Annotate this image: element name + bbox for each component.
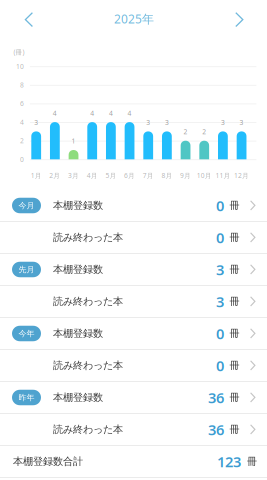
button[interactable]: 今年 <box>0 318 267 350</box>
button[interactable]: 前の年 <box>0 0 56 34</box>
staticText: 本棚登録数合計 <box>13 455 83 468</box>
staticText: 3月 <box>68 171 79 180</box>
button[interactable]: 今月 <box>0 190 267 222</box>
staticText: 本棚登録数 <box>53 199 103 212</box>
staticText: 4 <box>90 109 94 118</box>
staticText: 0 <box>216 196 224 215</box>
staticText: 今年 <box>18 329 34 338</box>
staticText: 7月 <box>143 171 154 180</box>
staticText: 先月 <box>18 265 34 274</box>
staticText: 冊 <box>229 231 239 244</box>
staticText: 12月 <box>234 171 249 180</box>
staticText: 2 <box>20 136 24 145</box>
staticText: 冊 <box>247 455 257 468</box>
staticText: 2025年 <box>114 11 154 27</box>
staticText: 冊 <box>229 295 239 308</box>
staticText: 11月 <box>215 171 230 180</box>
staticText: 8 <box>20 80 24 89</box>
staticText: 冊 <box>229 327 239 340</box>
staticText: 冊 <box>229 263 239 276</box>
staticText: 3 <box>165 118 169 127</box>
button[interactable]: 読み終わった本 <box>0 350 267 382</box>
staticText: 0 <box>216 324 224 343</box>
staticText: 6月 <box>124 171 135 180</box>
staticText: 昨年 <box>18 393 34 402</box>
button[interactable]: 読み終わった本 <box>0 222 267 254</box>
staticText: 読み終わった本 <box>53 231 123 244</box>
staticText: 読み終わった本 <box>53 423 123 436</box>
button[interactable]: 次の年 <box>211 0 267 34</box>
staticText: 4 <box>109 109 113 118</box>
staticText: 0 <box>216 228 224 247</box>
staticText: 6 <box>20 99 24 108</box>
staticText: 冊 <box>229 391 239 404</box>
staticText: 3 <box>216 260 224 279</box>
staticText: 36 <box>208 388 224 407</box>
button[interactable]: 読み終わった本 <box>0 414 267 446</box>
staticText: 読み終わった本 <box>53 359 123 372</box>
staticText: 3 <box>216 292 224 311</box>
staticText: 冊 <box>229 423 239 436</box>
staticText: 1月 <box>31 171 42 180</box>
button[interactable]: 先月 <box>0 254 267 286</box>
staticText: 36 <box>208 420 224 439</box>
staticText: 10月 <box>197 171 212 180</box>
staticText: 10 <box>16 62 24 71</box>
staticText: 本棚登録数 <box>53 391 103 404</box>
button[interactable]: 読み終わった本 <box>0 286 267 318</box>
staticText: 9月 <box>180 171 191 180</box>
staticText: 今月 <box>18 201 34 210</box>
staticText: 3 <box>221 118 225 127</box>
staticText: 5月 <box>105 171 116 180</box>
staticText: 冊 <box>229 199 239 212</box>
staticText: 3 <box>34 118 38 127</box>
staticText: 本棚登録数 <box>53 327 103 340</box>
staticText: 4 <box>53 109 57 118</box>
staticText: 3 <box>240 118 244 127</box>
staticText: 読み終わった本 <box>53 295 123 308</box>
staticText: 2月 <box>49 171 60 180</box>
staticText: 0 <box>20 155 24 164</box>
staticText: 2 <box>202 127 206 136</box>
staticText: (冊) <box>13 48 24 56</box>
button[interactable]: 昨年 <box>0 382 267 414</box>
staticText: 4 <box>20 118 24 127</box>
staticText: 本棚登録数 <box>53 263 103 276</box>
staticText: 1 <box>71 137 75 145</box>
staticText: 8月 <box>161 171 172 180</box>
staticText: 4月 <box>87 171 98 180</box>
staticText: 冊 <box>229 359 239 372</box>
staticText: 0 <box>216 356 224 375</box>
staticText: 3 <box>146 118 150 127</box>
staticText: 2 <box>184 127 188 136</box>
staticText: 4 <box>128 109 132 118</box>
staticText: 123 <box>217 452 241 471</box>
